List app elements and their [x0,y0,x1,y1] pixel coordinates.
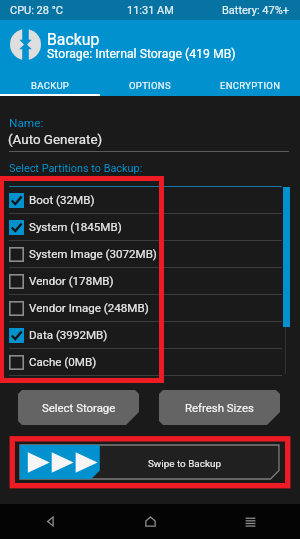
staticText: CPU: 28 °C [10,4,63,17]
staticText: Name: [9,116,44,130]
staticText: Boot (32MB) [29,193,95,207]
staticText: Cache (0MB) [29,355,97,369]
staticText: Refresh Sizes [185,401,254,414]
staticText: ENCRYPTION [220,80,281,91]
button[interactable]: Select Storage [18,390,139,425]
staticText: OPTIONS [129,80,171,91]
button[interactable]: Vendor (178MB) [9,268,282,294]
button[interactable]: Home [100,504,200,539]
button[interactable]: OPTIONS [100,74,200,96]
button[interactable]: Swipe to Backup [20,445,279,479]
staticText: (Auto Generate) [8,132,103,148]
button[interactable]: Cache (0MB) [9,349,282,375]
staticText: System Image (3072MB) [29,247,157,261]
staticText: 11:31 AM [127,4,174,17]
staticText: Select Partitions to Backup: [9,162,143,175]
staticText: Data (3992MB) [29,328,108,342]
staticText: Vendor Image (248MB) [29,301,149,315]
staticText: System (1845MB) [29,220,122,234]
button[interactable]: Refresh Sizes [159,390,280,425]
button[interactable]: Recent apps [200,504,300,539]
staticText: Backup [47,30,100,49]
staticText: BACKUP [31,80,70,91]
staticText: Storage: Internal Storage (419 MB) [47,47,236,61]
button[interactable]: System Image (3072MB) [9,241,282,267]
staticText: Battery: 47%+ [222,4,289,17]
button[interactable]: Vendor Image (248MB) [9,295,282,321]
button[interactable]: System (1845MB) [9,214,282,240]
button[interactable]: Boot (32MB) [9,187,282,213]
staticText: Swipe to Backup [148,458,221,470]
button[interactable]: Back [0,504,100,539]
button[interactable]: Data (3992MB) [9,322,282,348]
staticText: Vendor (178MB) [29,274,114,288]
staticText: Select Storage [42,401,116,414]
button[interactable]: BACKUP [0,74,100,96]
button[interactable]: ENCRYPTION [200,74,300,96]
